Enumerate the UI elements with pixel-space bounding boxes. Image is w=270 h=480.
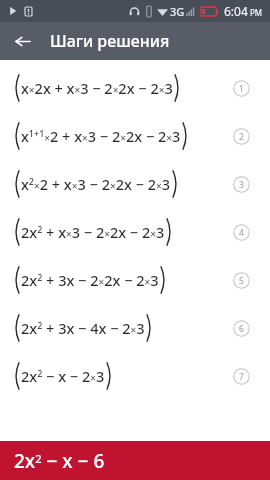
button[interactable]: Step 6: [233, 320, 250, 337]
staticText: 3: [239, 179, 244, 191]
button[interactable]: 2x2 + 3x − 4x − 2×3: [0, 304, 270, 352]
button[interactable]: Step 1: [233, 80, 250, 97]
button[interactable]: Step 4: [233, 224, 250, 241]
staticText: PM: [250, 7, 263, 18]
staticText: 7: [239, 371, 244, 383]
staticText: Шаги решения: [50, 30, 170, 52]
button[interactable]: x×2x + x×3 − 2×2x − 2×3: [0, 64, 270, 112]
staticText: 2x2 + 3x − 2×2x − 2×3: [21, 270, 159, 290]
staticText: x1+1×2 + x×3 − 2×2x − 2×3: [21, 126, 181, 146]
button[interactable]: Step 5: [233, 272, 250, 289]
button[interactable]: 2x2 − x − 2×3: [0, 352, 270, 400]
staticText: 2x2 + x×3 − 2×2x − 2×3: [21, 222, 165, 242]
button[interactable]: Step 3: [233, 176, 250, 193]
button[interactable]: 2x2 + 3x − 2×2x − 2×3: [0, 256, 270, 304]
staticText: 2: [239, 131, 244, 143]
staticText: 6:04: [224, 3, 248, 19]
staticText: 5: [239, 275, 244, 287]
button[interactable]: 2x2 + x×3 − 2×2x − 2×3: [0, 208, 270, 256]
staticText: 2x2 − x − 2×3: [21, 366, 105, 386]
staticText: 2x2 + 3x − 4x − 2×3: [21, 318, 145, 338]
button[interactable]: 2x2 − x − 6: [0, 441, 270, 480]
button[interactable]: Back: [6, 25, 38, 57]
staticText: 6: [239, 323, 244, 335]
staticText: x2×2 + x×3 − 2×2x − 2×3: [21, 174, 171, 194]
staticText: 4: [239, 227, 244, 239]
button[interactable]: Step 2: [233, 128, 250, 145]
button[interactable]: x2×2 + x×3 − 2×2x − 2×3: [0, 160, 270, 208]
staticText: 1: [239, 83, 244, 95]
staticText: 3G: [170, 4, 185, 19]
button[interactable]: Step 7: [233, 368, 250, 385]
staticText: x×2x + x×3 − 2×2x − 2×3: [21, 78, 173, 98]
button[interactable]: x1+1×2 + x×3 − 2×2x − 2×3: [0, 112, 270, 160]
staticText: 2x2 − x − 6: [14, 448, 105, 474]
